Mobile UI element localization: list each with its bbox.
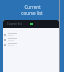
button[interactable]: [3, 32, 59, 37]
button[interactable]: Course list header: [3, 20, 59, 28]
staticText: Course list: [7, 22, 22, 26]
button[interactable]: [3, 42, 59, 47]
button[interactable]: [3, 37, 59, 42]
staticText: Current: [24, 4, 41, 10]
staticText: course list: [21, 10, 43, 16]
